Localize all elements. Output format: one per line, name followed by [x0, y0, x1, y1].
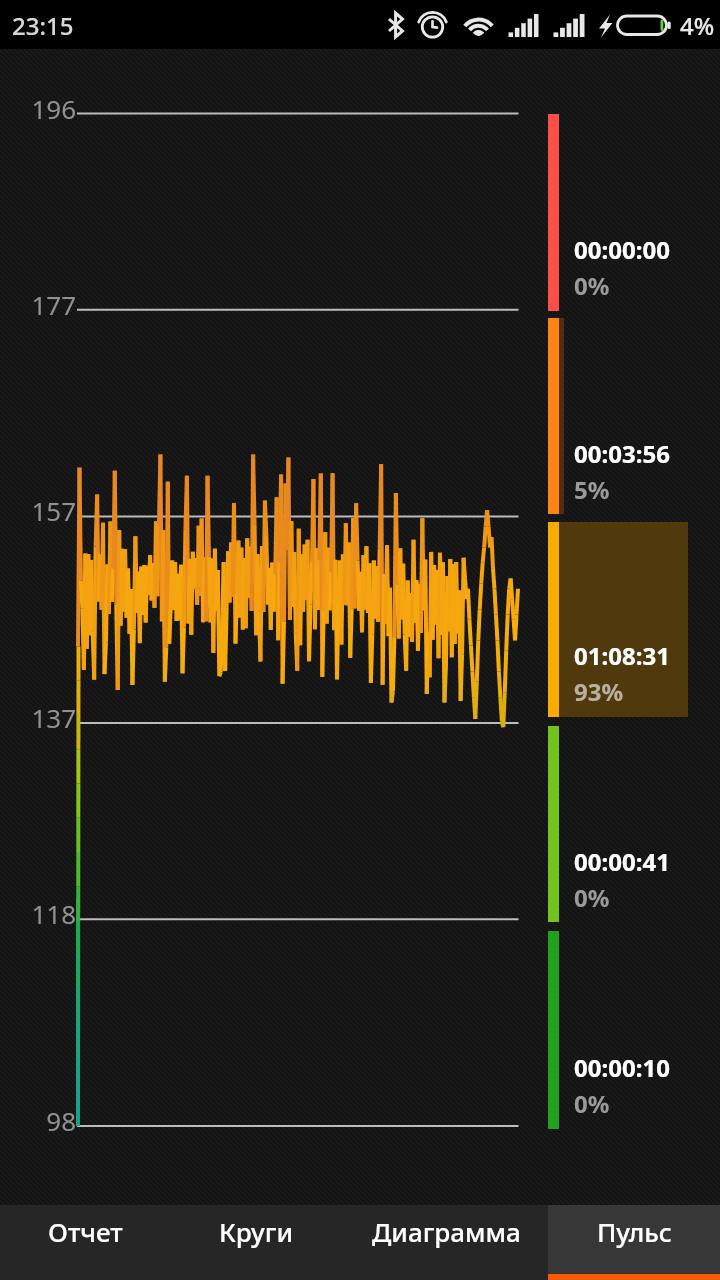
staticText: 01:08:31 [574, 639, 670, 672]
staticText: 93% [574, 675, 624, 708]
staticText: 00:00:41 [574, 845, 670, 878]
staticText: 4% [680, 9, 715, 42]
staticText: 137 [0, 700, 76, 735]
staticText: 00:00:00 [574, 233, 670, 266]
staticText: 0% [574, 1087, 610, 1120]
staticText: 00:00:10 [574, 1051, 670, 1084]
button[interactable]: Пульс [548, 1205, 720, 1280]
staticText: 23:15 [12, 9, 74, 42]
button[interactable] [548, 931, 688, 1129]
staticText: 157 [0, 493, 76, 528]
staticText: 98 [0, 1103, 76, 1138]
staticText: 196 [0, 91, 76, 126]
staticText: 0% [574, 269, 610, 302]
staticText: 00:03:56 [574, 437, 670, 470]
button[interactable] [548, 726, 688, 922]
staticText: Пульс [597, 1214, 672, 1249]
staticText: Диаграмма [372, 1214, 521, 1249]
staticText: 118 [0, 896, 76, 931]
button[interactable]: Круги [176, 1205, 336, 1280]
staticText: 0% [574, 881, 610, 914]
staticText: 5% [574, 473, 610, 506]
staticText: 177 [0, 287, 76, 322]
button[interactable] [548, 318, 688, 514]
button[interactable] [548, 522, 688, 717]
button[interactable]: Отчет [0, 1205, 176, 1280]
staticText: Круги [219, 1214, 293, 1249]
button[interactable]: Диаграмма [336, 1205, 548, 1280]
staticText: Отчет [48, 1214, 123, 1249]
button[interactable] [548, 114, 688, 311]
